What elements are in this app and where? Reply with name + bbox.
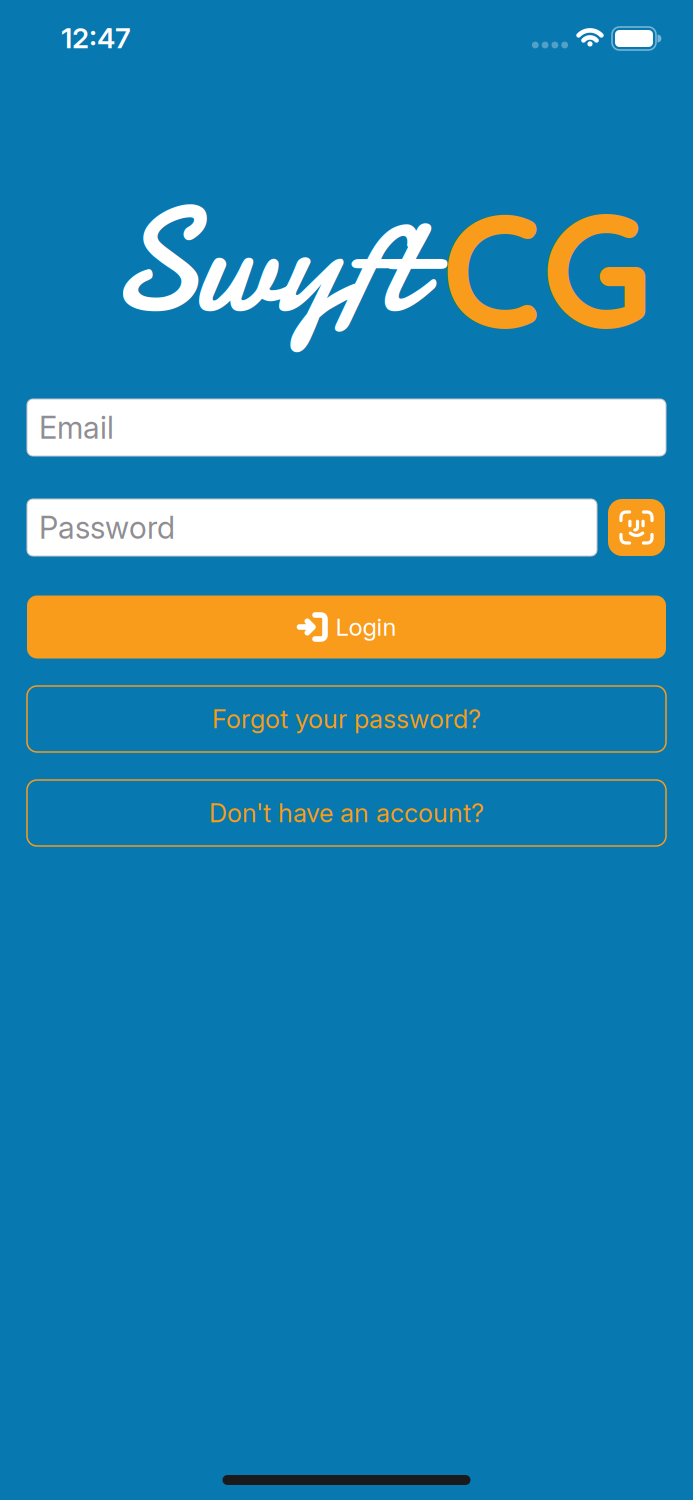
staticText: Swyft <box>109 158 420 364</box>
staticText: Email <box>39 409 114 446</box>
button[interactable]: Log in with Face ID <box>608 499 665 556</box>
staticText: Forgot your password? <box>212 704 481 734</box>
button[interactable]: Forgot your password? <box>27 686 666 752</box>
button[interactable]: Password <box>27 499 597 556</box>
staticText: Don't have an account? <box>209 798 484 828</box>
button[interactable]: Login <box>27 595 666 658</box>
staticText: Password <box>39 509 175 546</box>
button[interactable]: Email <box>27 399 666 456</box>
button[interactable]: Don't have an account? <box>27 780 666 846</box>
staticText: CG <box>441 167 652 367</box>
staticText: 12:47 <box>61 21 131 54</box>
staticText: Login <box>335 613 396 641</box>
